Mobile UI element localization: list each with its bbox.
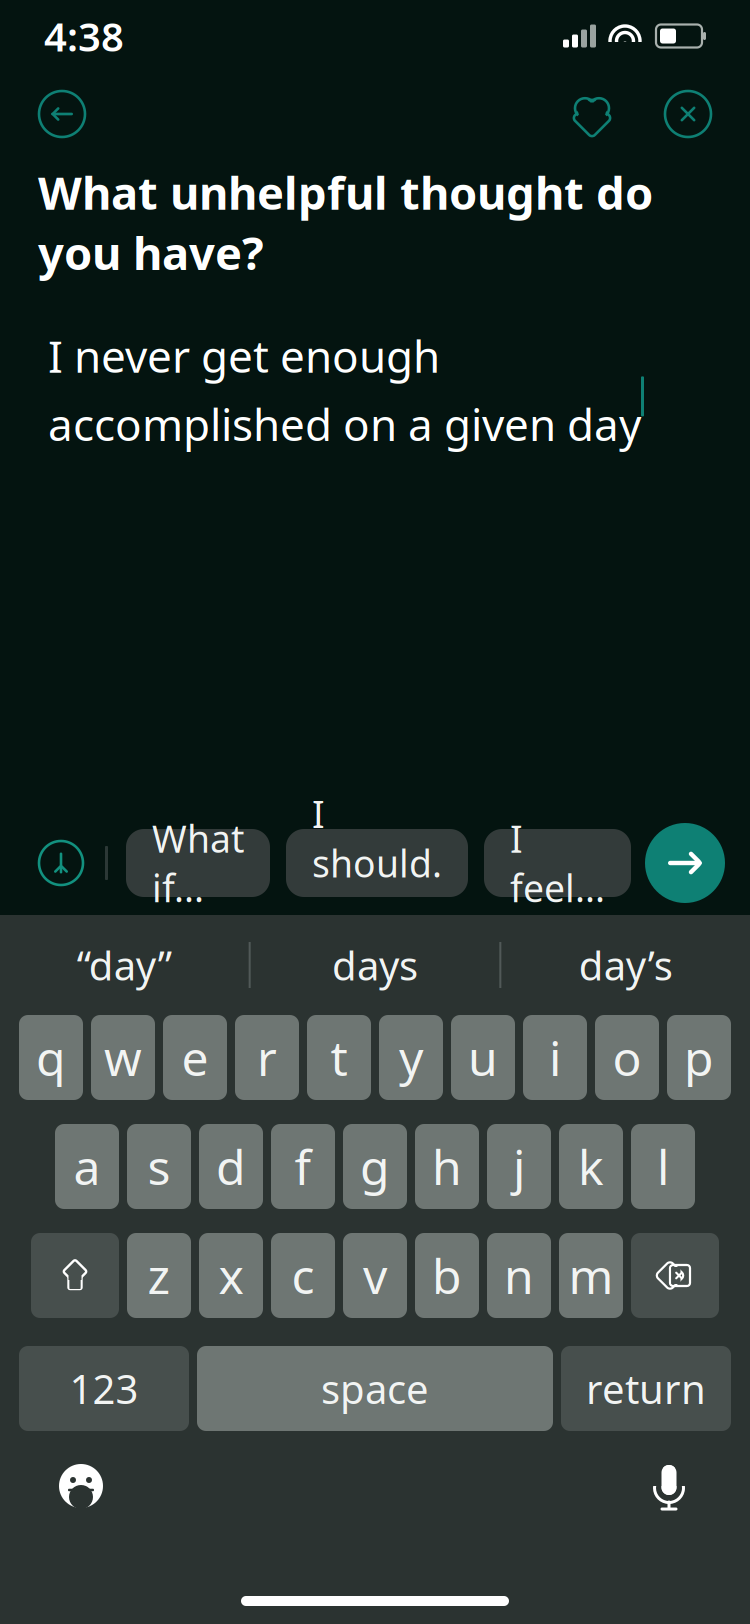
- button[interactable]: What if...: [126, 829, 270, 897]
- staticText: s: [147, 1135, 170, 1198]
- staticText: h: [432, 1135, 462, 1198]
- button[interactable]: b: [415, 1233, 479, 1318]
- staticText: g: [360, 1135, 390, 1198]
- staticText: space: [321, 1362, 429, 1415]
- staticText: z: [147, 1244, 170, 1307]
- button[interactable]: u: [451, 1015, 515, 1100]
- button[interactable]: return: [561, 1346, 731, 1431]
- button[interactable]: a: [55, 1124, 119, 1209]
- staticText: v: [363, 1244, 387, 1307]
- button[interactable]: Delete: [631, 1233, 719, 1318]
- staticText: I feel...: [510, 813, 605, 913]
- staticText: e: [181, 1026, 208, 1089]
- button[interactable]: day’s: [501, 927, 750, 1003]
- staticText: What if...: [152, 813, 244, 913]
- staticText: c: [291, 1244, 314, 1307]
- staticText: d: [216, 1135, 246, 1198]
- button[interactable]: Dictation: [624, 1441, 714, 1531]
- button[interactable]: f: [271, 1124, 335, 1209]
- staticText: f: [294, 1135, 311, 1198]
- button[interactable]: “day”: [0, 927, 249, 1003]
- button[interactable]: p: [667, 1015, 731, 1100]
- staticText: o: [612, 1026, 641, 1089]
- button[interactable]: k: [559, 1124, 623, 1209]
- staticText: b: [432, 1244, 462, 1307]
- staticText: day’s: [579, 938, 673, 991]
- staticText: 4:38: [44, 9, 124, 62]
- button[interactable]: s: [127, 1124, 191, 1209]
- staticText: w: [104, 1026, 142, 1089]
- staticText: t: [330, 1026, 347, 1089]
- button[interactable]: Close: [658, 84, 718, 144]
- staticText: p: [684, 1026, 714, 1089]
- staticText: m: [568, 1244, 613, 1307]
- staticText: j: [513, 1135, 525, 1198]
- staticText: q: [36, 1026, 66, 1089]
- button[interactable]: o: [595, 1015, 659, 1100]
- button[interactable]: Back: [32, 84, 92, 144]
- staticText: k: [578, 1135, 604, 1198]
- button[interactable]: w: [91, 1015, 155, 1100]
- button[interactable]: I feel...: [484, 829, 631, 897]
- button[interactable]: r: [235, 1015, 299, 1100]
- button[interactable]: x: [199, 1233, 263, 1318]
- staticText: x: [218, 1244, 243, 1307]
- staticText: a: [73, 1135, 100, 1198]
- button[interactable]: q: [19, 1015, 83, 1100]
- button[interactable]: n: [487, 1233, 551, 1318]
- button[interactable]: Submit: [645, 823, 725, 903]
- button[interactable]: j: [487, 1124, 551, 1209]
- button[interactable]: y: [379, 1015, 443, 1100]
- button[interactable]: days: [251, 927, 499, 1003]
- button[interactable]: z: [127, 1233, 191, 1318]
- button[interactable]: v: [343, 1233, 407, 1318]
- button[interactable]: m: [559, 1233, 623, 1318]
- staticText: What unhelpful thought do you have?: [38, 162, 653, 282]
- staticText: days: [332, 938, 418, 991]
- staticText: I should...: [312, 789, 442, 937]
- button[interactable]: Hide keyboard: [33, 835, 89, 891]
- button[interactable]: t: [307, 1015, 371, 1100]
- button[interactable]: I should...: [286, 829, 468, 897]
- staticText: 123: [69, 1362, 138, 1415]
- button[interactable]: h: [415, 1124, 479, 1209]
- button[interactable]: g: [343, 1124, 407, 1209]
- staticText: i: [549, 1026, 561, 1089]
- staticText: u: [468, 1026, 498, 1089]
- button[interactable]: space: [197, 1346, 553, 1431]
- staticText: r: [257, 1026, 277, 1089]
- button[interactable]: l: [631, 1124, 695, 1209]
- staticText: l: [657, 1135, 669, 1198]
- button[interactable]: Favorite: [562, 84, 622, 144]
- button[interactable]: d: [199, 1124, 263, 1209]
- button[interactable]: i: [523, 1015, 587, 1100]
- button[interactable]: Shift: [31, 1233, 119, 1318]
- button[interactable]: 123: [19, 1346, 189, 1431]
- button[interactable]: Emoji: [36, 1441, 126, 1531]
- staticText: I never get enough accomplished on a giv…: [48, 326, 641, 453]
- button[interactable]: e: [163, 1015, 227, 1100]
- staticText: n: [504, 1244, 534, 1307]
- staticText: return: [586, 1362, 706, 1415]
- staticText: “day”: [77, 938, 172, 991]
- staticText: y: [399, 1026, 423, 1089]
- button[interactable]: c: [271, 1233, 335, 1318]
